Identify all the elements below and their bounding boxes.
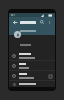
button[interactable]: Message <box>47 73 53 79</box>
button[interactable]: Navigate up <box>11 18 19 26</box>
button[interactable]: Contact photo <box>14 31 21 38</box>
button[interactable]: More options <box>46 19 53 26</box>
button[interactable]: Search <box>38 18 46 26</box>
button[interactable] <box>9 51 55 60</box>
button[interactable] <box>9 61 55 70</box>
button[interactable] <box>20 21 36 24</box>
button[interactable]: Message <box>9 71 55 80</box>
button[interactable] <box>9 81 55 87</box>
